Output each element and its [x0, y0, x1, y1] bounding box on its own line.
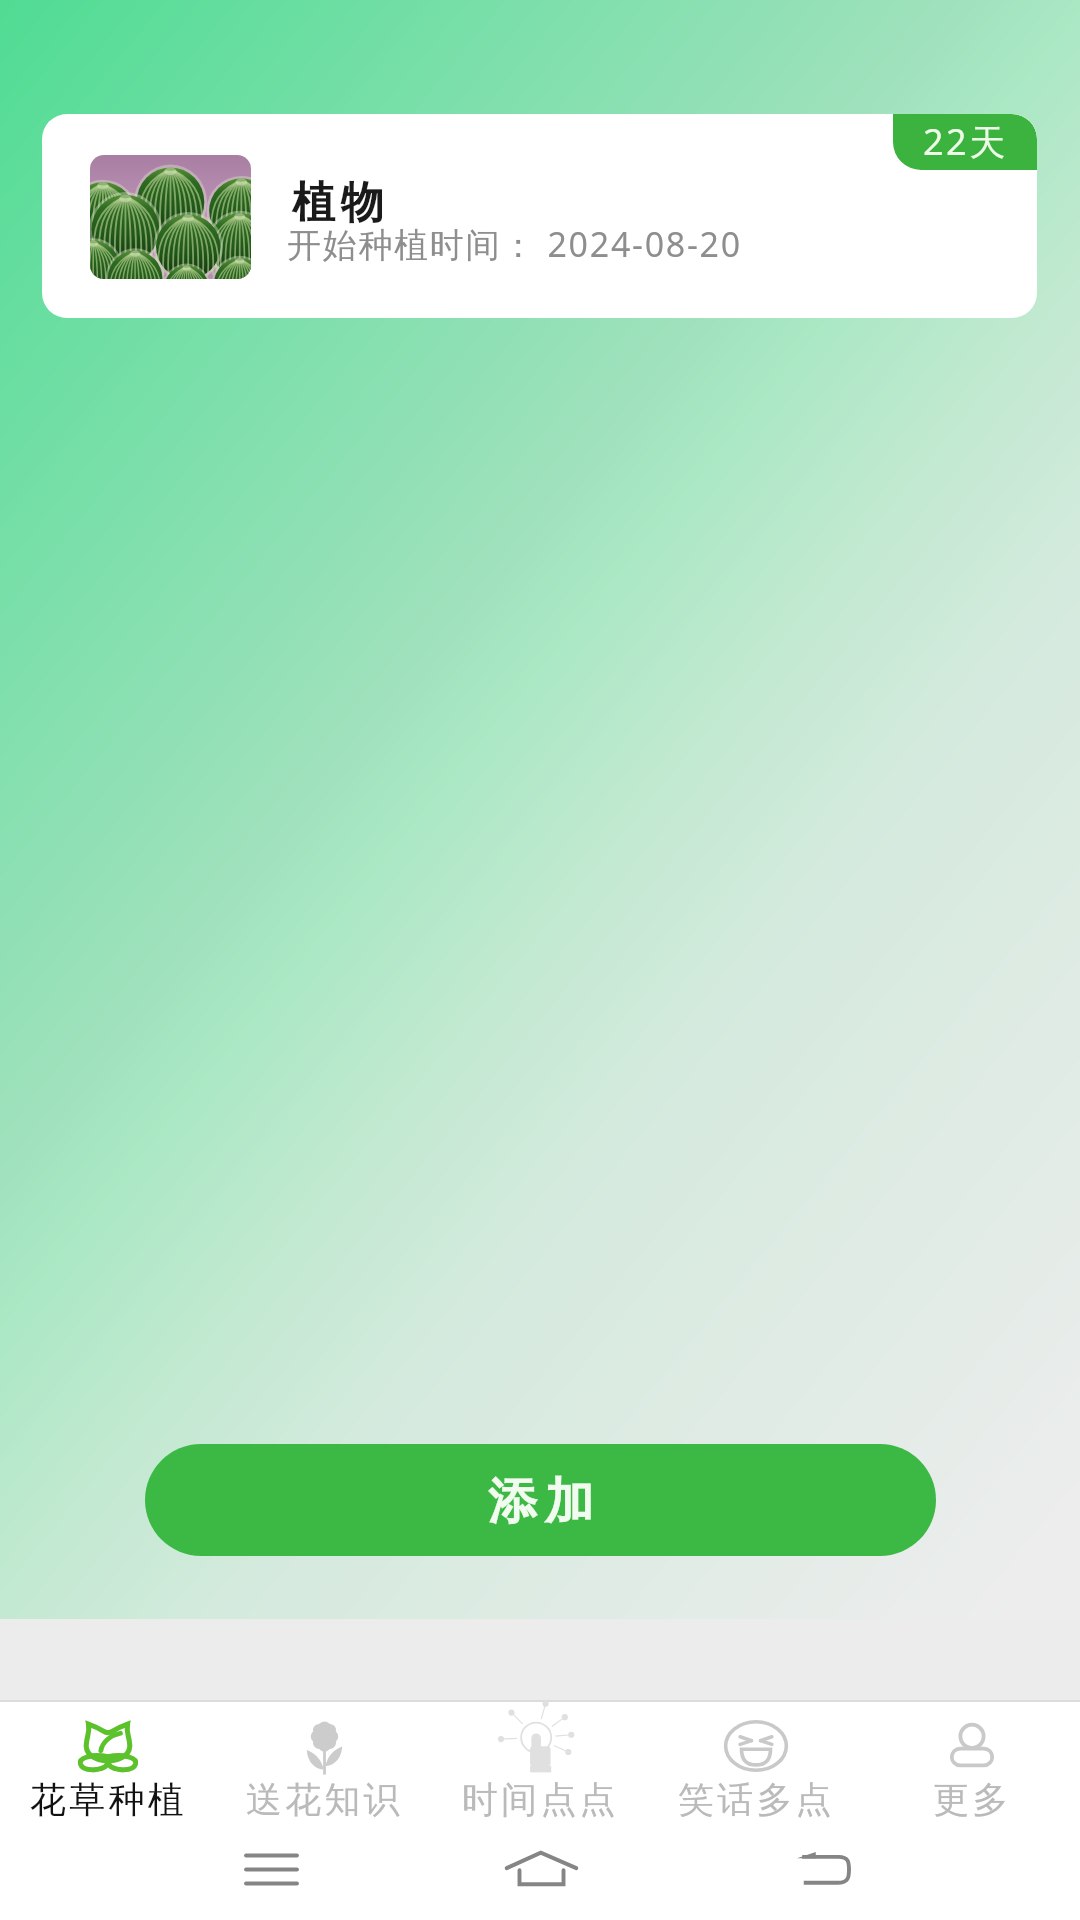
button[interactable]: 花草种植	[0, 1705, 216, 1824]
staticText: 植物	[289, 176, 387, 230]
staticText: 笑话多点	[678, 1777, 835, 1822]
button[interactable]: 笑话多点	[648, 1705, 864, 1824]
staticText: 更多	[933, 1777, 1012, 1822]
staticText: 送花知识	[246, 1777, 403, 1822]
button[interactable]: Home	[501, 1840, 581, 1898]
button[interactable]: 植物	[42, 114, 1037, 318]
button[interactable]: Recent apps	[231, 1843, 311, 1895]
staticText: 22天	[923, 117, 1008, 166]
button[interactable]: Back	[783, 1840, 863, 1898]
staticText: 添加	[484, 1471, 598, 1533]
button[interactable]: 送花知识	[216, 1705, 432, 1824]
staticText: 花草种植	[30, 1777, 187, 1822]
button[interactable]: 时间点点	[432, 1705, 648, 1824]
staticText: 开始种植时间： 2024-08-20	[287, 221, 742, 267]
staticText: 时间点点	[462, 1777, 619, 1822]
button[interactable]: 更多	[864, 1705, 1080, 1824]
button[interactable]: 添加	[145, 1444, 936, 1556]
